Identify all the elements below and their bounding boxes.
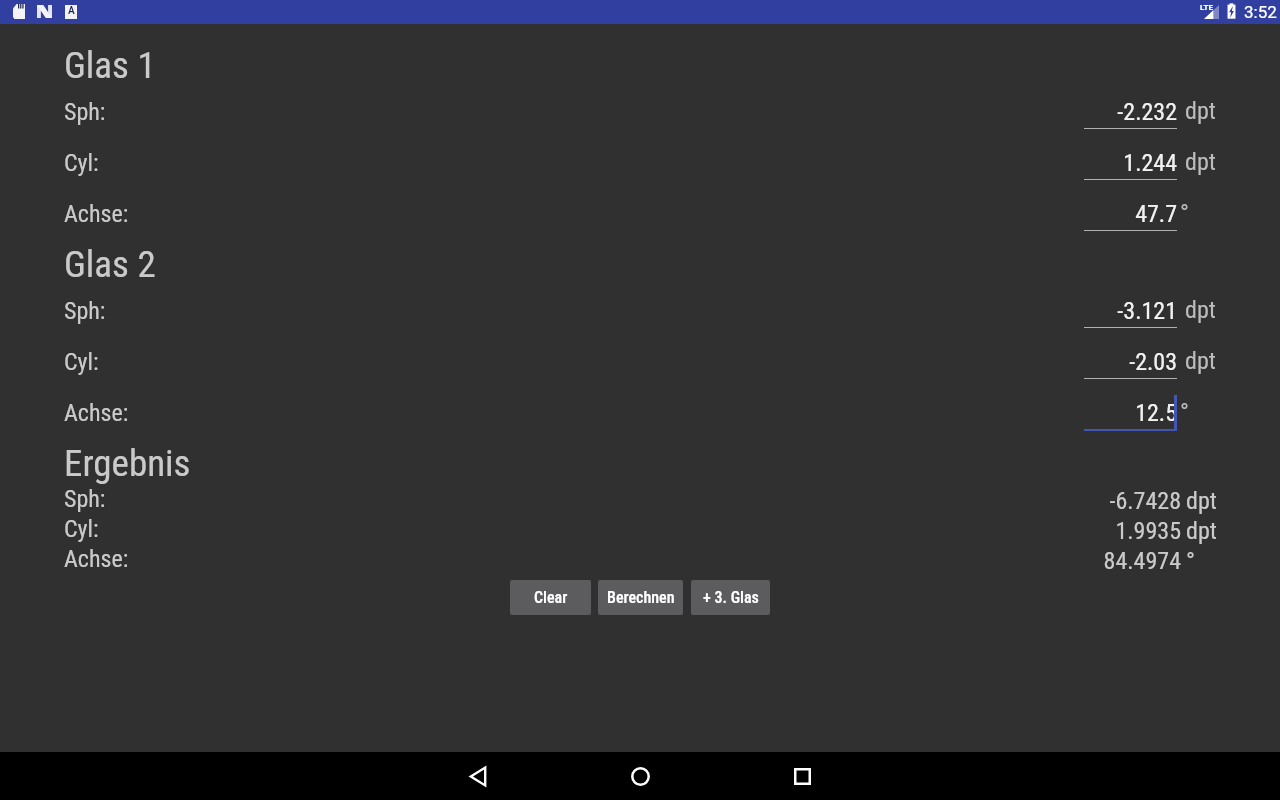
button[interactable]: -2.232: [1084, 86, 1177, 130]
staticText: Glas 1: [64, 44, 156, 87]
staticText: °: [1186, 547, 1195, 575]
staticText: dpt: [1185, 296, 1216, 324]
staticText: dpt: [1185, 148, 1216, 176]
button[interactable]: -3.121: [1084, 285, 1177, 329]
button[interactable]: Recent apps: [778, 752, 826, 800]
staticText: Clear: [534, 588, 568, 607]
staticText: dpt: [1185, 97, 1216, 125]
button[interactable]: Clear: [510, 580, 591, 615]
button[interactable]: 12.5: [1084, 387, 1177, 431]
button[interactable]: -2.03: [1084, 336, 1177, 380]
button[interactable]: + 3. Glas: [691, 580, 770, 615]
staticText: 1.244: [1084, 149, 1177, 177]
button[interactable]: 1.244: [1084, 137, 1177, 181]
staticText: -6.7428: [1021, 487, 1181, 515]
staticText: -3.121: [1084, 297, 1177, 325]
staticText: dpt: [1186, 517, 1217, 545]
staticText: -2.03: [1084, 348, 1177, 376]
button[interactable]: Back: [454, 752, 502, 800]
staticText: Achse:: [64, 399, 129, 427]
staticText: + 3. Glas: [703, 588, 759, 607]
staticText: Ergebnis: [64, 442, 191, 485]
button[interactable]: Home: [616, 752, 664, 800]
staticText: A: [68, 5, 75, 17]
staticText: Cyl:: [64, 348, 99, 376]
staticText: Achse:: [64, 545, 129, 573]
staticText: Sph:: [64, 98, 106, 126]
staticText: Achse:: [64, 200, 129, 228]
staticText: 3:52: [1244, 2, 1277, 22]
staticText: Sph:: [64, 485, 106, 513]
staticText: -2.232: [1084, 98, 1177, 126]
staticText: °: [1180, 199, 1189, 227]
staticText: 47.7: [1084, 200, 1177, 228]
staticText: Cyl:: [64, 149, 99, 177]
staticText: Glas 2: [64, 243, 156, 286]
staticText: 12.5: [1084, 399, 1177, 427]
staticText: dpt: [1186, 487, 1217, 515]
staticText: dpt: [1185, 347, 1216, 375]
button[interactable]: Berechnen: [598, 580, 683, 615]
staticText: °: [1180, 398, 1189, 426]
staticText: 84.4974: [1021, 547, 1181, 575]
staticText: Sph:: [64, 297, 106, 325]
staticText: Cyl:: [64, 515, 99, 543]
staticText: LTE: [1200, 3, 1213, 12]
staticText: Berechnen: [607, 588, 675, 607]
staticText: 1.9935: [1021, 517, 1181, 545]
button[interactable]: 47.7: [1084, 188, 1177, 232]
